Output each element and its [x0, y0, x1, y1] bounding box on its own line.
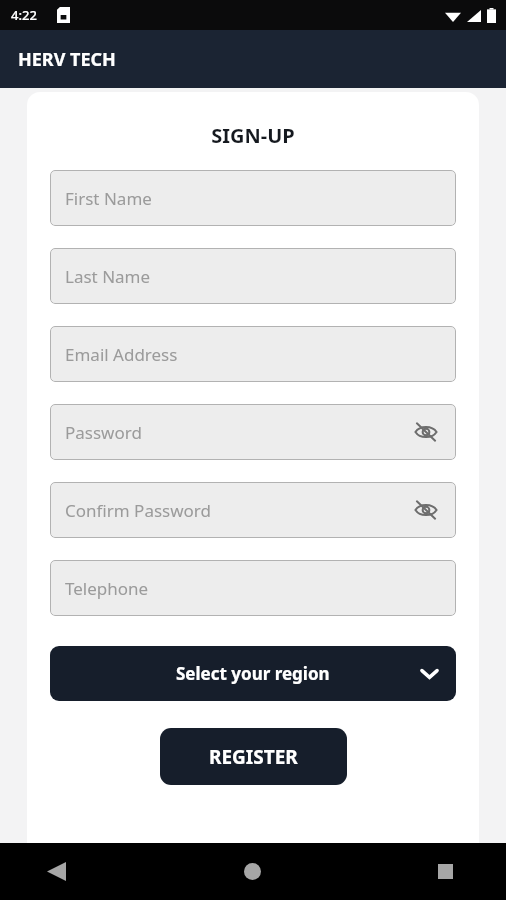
button[interactable]: Telephone: [50, 560, 456, 616]
button[interactable]: Last Name: [50, 248, 456, 304]
button[interactable]: Back: [0, 843, 168, 900]
staticText: 4:22: [11, 6, 37, 24]
button[interactable]: First Name: [50, 170, 456, 226]
button[interactable]: Show password: [409, 493, 443, 527]
staticText: First Name: [65, 187, 152, 210]
staticText: Password: [65, 421, 142, 444]
staticText: Select your region: [176, 662, 330, 685]
button[interactable]: REGISTER: [160, 728, 347, 785]
staticText: Last Name: [65, 265, 151, 288]
button[interactable]: Password: [50, 404, 456, 460]
button[interactable]: Home: [168, 843, 337, 900]
button[interactable]: Show password: [409, 415, 443, 449]
button[interactable]: Select your region: [50, 646, 456, 701]
button[interactable]: Confirm Password: [50, 482, 456, 538]
staticText: Email Address: [65, 343, 178, 366]
staticText: REGISTER: [209, 744, 298, 770]
button[interactable]: Email Address: [50, 326, 456, 382]
staticText: Telephone: [65, 577, 149, 600]
button[interactable]: Recent apps: [337, 843, 506, 900]
staticText: SIGN-UP: [27, 122, 479, 149]
staticText: HERV TECH: [18, 47, 116, 72]
staticText: Confirm Password: [65, 499, 211, 522]
